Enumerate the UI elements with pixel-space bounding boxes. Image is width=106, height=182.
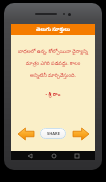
button[interactable]: SHARE bbox=[40, 128, 66, 139]
button[interactable]: Home bbox=[49, 151, 58, 160]
staticText: బాధలలో ఉన్న, కోల్పోయినా ధైర్యాన్ని bbox=[17, 48, 89, 56]
staticText: మాత్రం ఎగిరి పడవద్దు. కాలం bbox=[17, 60, 89, 68]
button[interactable]: Recent apps bbox=[72, 151, 81, 160]
button[interactable]: Previous bbox=[17, 127, 34, 140]
staticText: అన్నిటినీ మార్చివేస్తుంది. bbox=[17, 72, 89, 80]
button[interactable]: Next bbox=[72, 127, 89, 140]
staticText: - శ్రీ రాం bbox=[17, 91, 89, 99]
staticText: తెలుగు సూక్తులు bbox=[36, 26, 70, 34]
button[interactable]: Back bbox=[25, 151, 34, 160]
button[interactable]: తెలుగు సూక్తులు bbox=[11, 24, 95, 35]
staticText: SHARE bbox=[47, 131, 60, 136]
